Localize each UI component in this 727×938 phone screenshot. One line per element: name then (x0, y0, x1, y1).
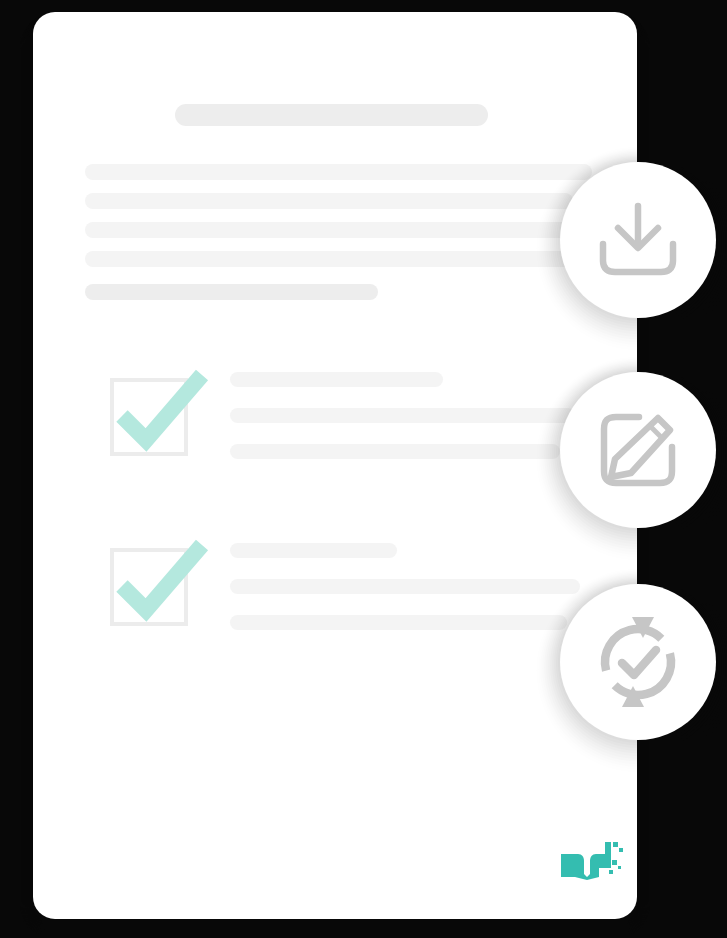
button[interactable]: Download (560, 162, 716, 318)
button[interactable]: Edit (560, 372, 716, 528)
button[interactable]: Sync (560, 584, 716, 740)
